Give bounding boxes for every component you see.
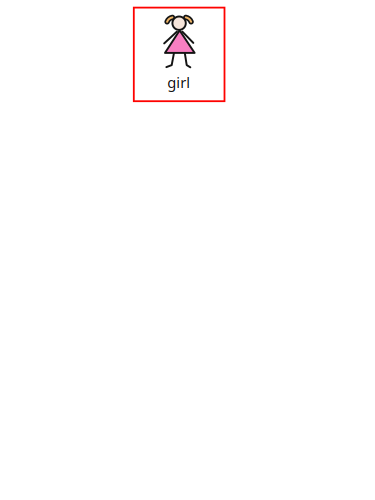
- button[interactable]: girl: [133, 6, 224, 102]
- staticText: girl: [167, 73, 190, 92]
